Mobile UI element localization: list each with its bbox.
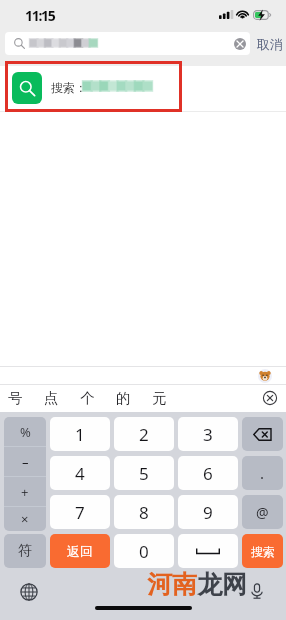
staticText: 4 xyxy=(75,462,85,485)
staticText: × xyxy=(21,510,29,528)
staticText: 11:15 xyxy=(25,6,55,25)
button[interactable] xyxy=(5,32,250,55)
button[interactable] xyxy=(0,66,286,111)
staticText: 1 xyxy=(75,423,85,446)
button[interactable]: Voice input xyxy=(249,583,265,599)
staticText: 6 xyxy=(203,462,213,485)
button[interactable]: Backspace xyxy=(242,417,283,451)
staticText: 3 xyxy=(203,423,213,446)
button[interactable]: 1 xyxy=(50,417,110,451)
staticText: 龙网 xyxy=(197,569,247,600)
button[interactable]: 3 xyxy=(178,417,238,451)
button[interactable]: + xyxy=(4,477,46,506)
button[interactable]: % xyxy=(4,417,46,446)
staticText: 取消 xyxy=(257,36,283,52)
button[interactable]: Hide candidates xyxy=(263,391,277,405)
staticText: 点 xyxy=(44,389,59,407)
staticText: 2 xyxy=(139,423,149,446)
button[interactable]: – xyxy=(4,447,46,476)
button[interactable]: 符 xyxy=(4,534,46,568)
button[interactable]: 8 xyxy=(114,495,174,529)
button[interactable]: 个 xyxy=(74,385,100,410)
staticText: 搜索： xyxy=(51,80,87,95)
button[interactable]: 0 xyxy=(114,534,174,568)
staticText: 河南 xyxy=(147,569,197,600)
button[interactable]: 点 xyxy=(38,385,64,410)
button[interactable]: Sticker xyxy=(258,369,272,383)
staticText: 元 xyxy=(152,389,167,407)
staticText: – xyxy=(22,453,29,471)
staticText: 8 xyxy=(139,501,149,524)
button[interactable]: Clear search xyxy=(234,38,246,50)
button[interactable]: 返回 xyxy=(50,534,110,568)
button[interactable]: × xyxy=(4,507,46,531)
button[interactable]: 的 xyxy=(110,385,136,410)
button[interactable]: @ xyxy=(242,495,283,529)
button[interactable]: 元 xyxy=(146,385,172,410)
staticText: 的 xyxy=(116,389,131,407)
button[interactable]: 取消 xyxy=(257,36,283,52)
staticText: 返回 xyxy=(67,543,93,559)
button[interactable]: 5 xyxy=(114,456,174,490)
staticText: 符 xyxy=(18,542,32,560)
staticText: % xyxy=(20,423,31,441)
staticText: 7 xyxy=(75,501,85,524)
staticText: @ xyxy=(256,503,269,522)
staticText: + xyxy=(21,483,29,501)
staticText: 号 xyxy=(8,389,23,407)
staticText: . xyxy=(260,463,265,483)
button[interactable]: 6 xyxy=(178,456,238,490)
button[interactable]: 9 xyxy=(178,495,238,529)
button[interactable]: 7 xyxy=(50,495,110,529)
button[interactable]: 搜索 xyxy=(242,534,283,568)
staticText: 0 xyxy=(139,540,149,563)
staticText: 5 xyxy=(139,462,149,485)
staticText: 9 xyxy=(203,501,213,524)
button[interactable]: 2 xyxy=(114,417,174,451)
button[interactable]: 4 xyxy=(50,456,110,490)
staticText: 搜索 xyxy=(251,544,275,559)
button[interactable]: Space xyxy=(178,534,238,568)
button[interactable]: . xyxy=(242,456,283,490)
button[interactable]: 号 xyxy=(2,385,28,410)
staticText: 个 xyxy=(80,389,95,407)
button[interactable]: Switch keyboard xyxy=(20,583,38,601)
